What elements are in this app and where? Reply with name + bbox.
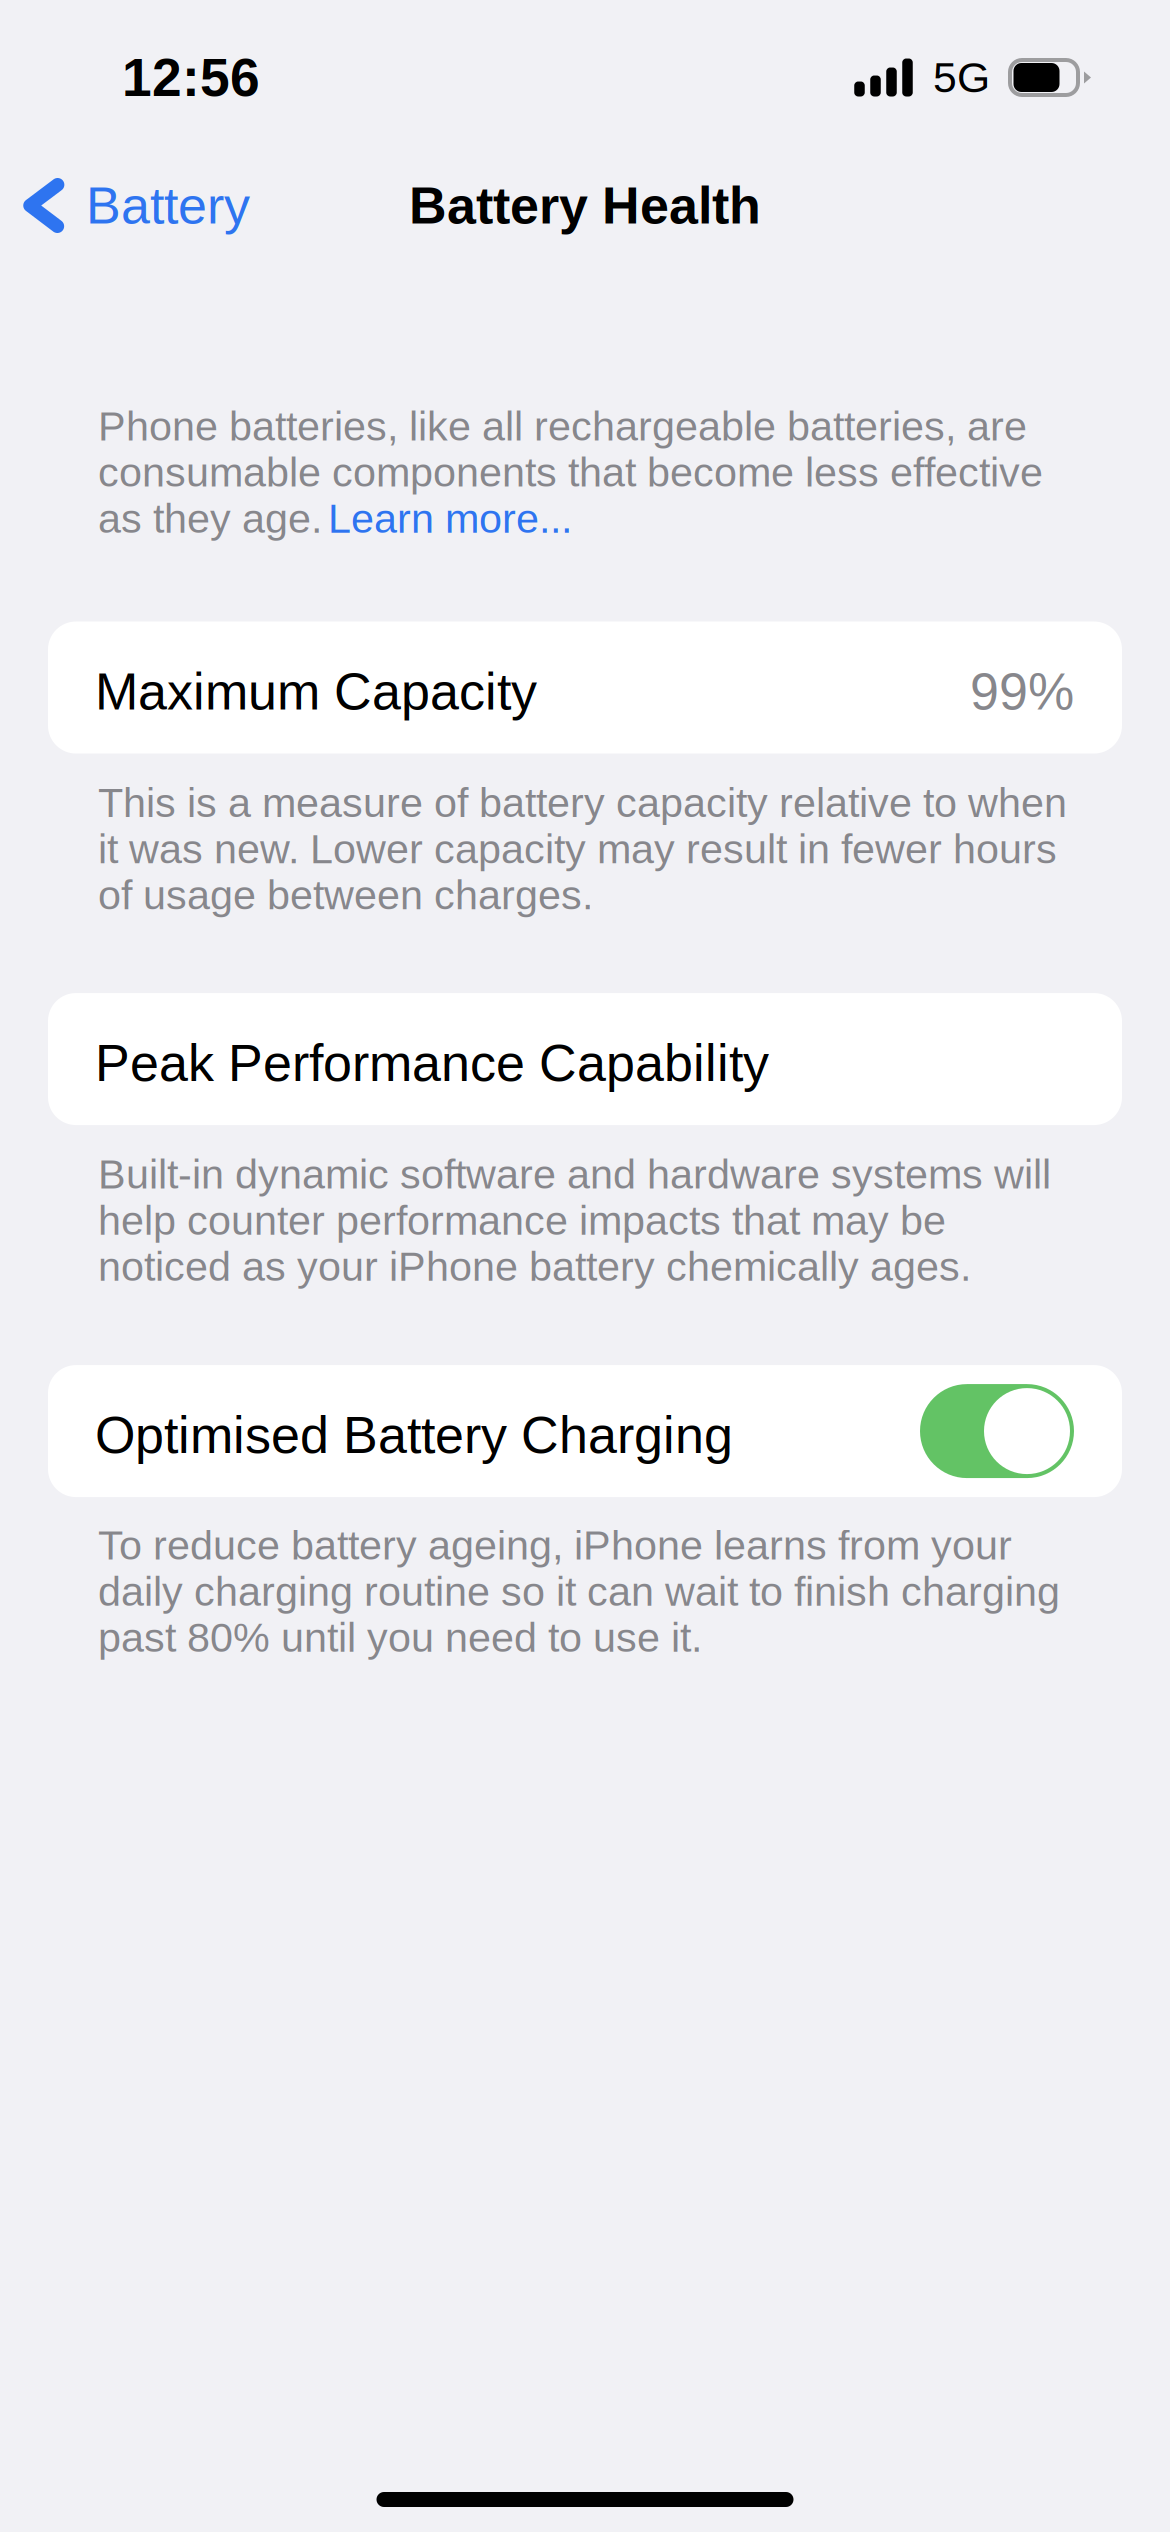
staticText: Battery Health xyxy=(409,176,761,235)
staticText: Built-in dynamic software and hardware s… xyxy=(98,1151,1051,1290)
staticText: 12:56 xyxy=(122,48,260,107)
button[interactable]: Learn more... xyxy=(328,495,572,542)
button[interactable]: Battery xyxy=(0,176,276,235)
staticText: as they age. xyxy=(98,495,322,542)
staticText: Phone batteries, like all rechargeable b… xyxy=(98,403,1027,449)
button[interactable]: Peak Performance Capability xyxy=(0,993,1170,1125)
staticText: To reduce battery ageing, iPhone learns … xyxy=(98,1522,1060,1661)
staticText: Peak Performance Capability xyxy=(95,1034,769,1092)
staticText: This is a measure of battery capacity re… xyxy=(98,779,1067,918)
staticText: 5G xyxy=(933,54,990,101)
button[interactable]: Maximum Capacity xyxy=(0,621,1170,753)
staticText: Battery xyxy=(86,176,250,235)
staticText: Learn more... xyxy=(328,495,572,542)
staticText: consumable components that become less e… xyxy=(98,449,1043,495)
button[interactable]: Optimised Battery Charging, on xyxy=(920,1384,1074,1478)
button[interactable]: Optimised Battery Charging xyxy=(0,1365,1170,1497)
staticText: Optimised Battery Charging xyxy=(95,1406,733,1464)
staticText: 99% xyxy=(970,662,1074,721)
staticText: Maximum Capacity xyxy=(95,662,537,721)
